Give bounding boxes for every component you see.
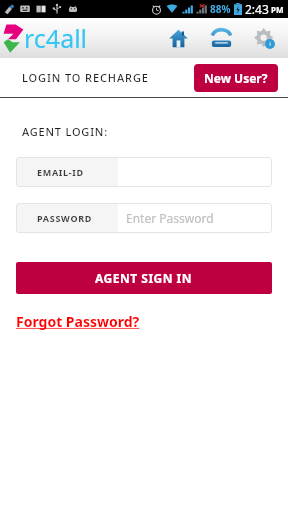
staticText: New User? <box>204 70 268 86</box>
button[interactable]: AGENT SIGN IN <box>16 262 272 294</box>
staticText: Forgot Password? <box>16 312 140 331</box>
staticText: AGENT LOGIN: <box>22 124 108 139</box>
staticText: PASSWORD <box>37 212 93 224</box>
staticText: Enter Password <box>126 210 214 226</box>
button[interactable]: Call support <box>205 22 237 54</box>
button[interactable]: Settings <box>248 22 280 54</box>
staticText: EMAIL-ID <box>37 166 84 178</box>
button[interactable]: rc4all <box>3 21 88 55</box>
button[interactable]: PASSWORD <box>16 203 272 233</box>
button[interactable]: EMAIL-ID <box>16 157 272 187</box>
button[interactable]: Forgot Password? <box>16 312 140 331</box>
staticText: 2:43 <box>245 1 269 17</box>
staticText: AGENT SIGN IN <box>95 270 193 286</box>
button[interactable]: New User? <box>194 64 278 92</box>
staticText: LOGIN TO RECHARGE <box>22 70 149 85</box>
button[interactable]: Home <box>162 22 194 54</box>
staticText: rc4all <box>24 21 88 55</box>
staticText: 88% <box>210 2 231 16</box>
staticText: PM <box>271 4 284 15</box>
